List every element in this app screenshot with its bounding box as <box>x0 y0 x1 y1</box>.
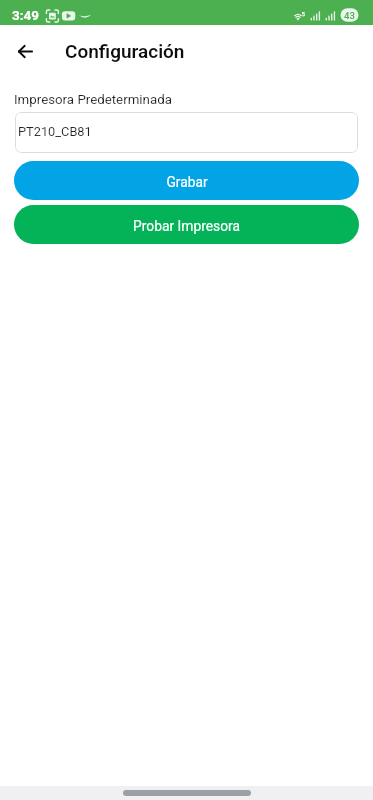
staticText: Configuración <box>65 40 185 62</box>
staticText: PT210_CB81 <box>18 124 92 139</box>
staticText: 3:49 <box>12 7 40 23</box>
button[interactable]: Grabar <box>14 161 359 200</box>
staticText: Probar Impresora <box>133 218 240 234</box>
button[interactable]: Back <box>9 35 41 67</box>
staticText: 43 <box>344 10 355 21</box>
staticText: Impresora Predeterminada <box>14 92 172 108</box>
button[interactable]: Probar Impresora <box>14 205 359 244</box>
button[interactable]: PT210_CB81 <box>15 112 358 153</box>
staticText: Grabar <box>166 174 208 190</box>
